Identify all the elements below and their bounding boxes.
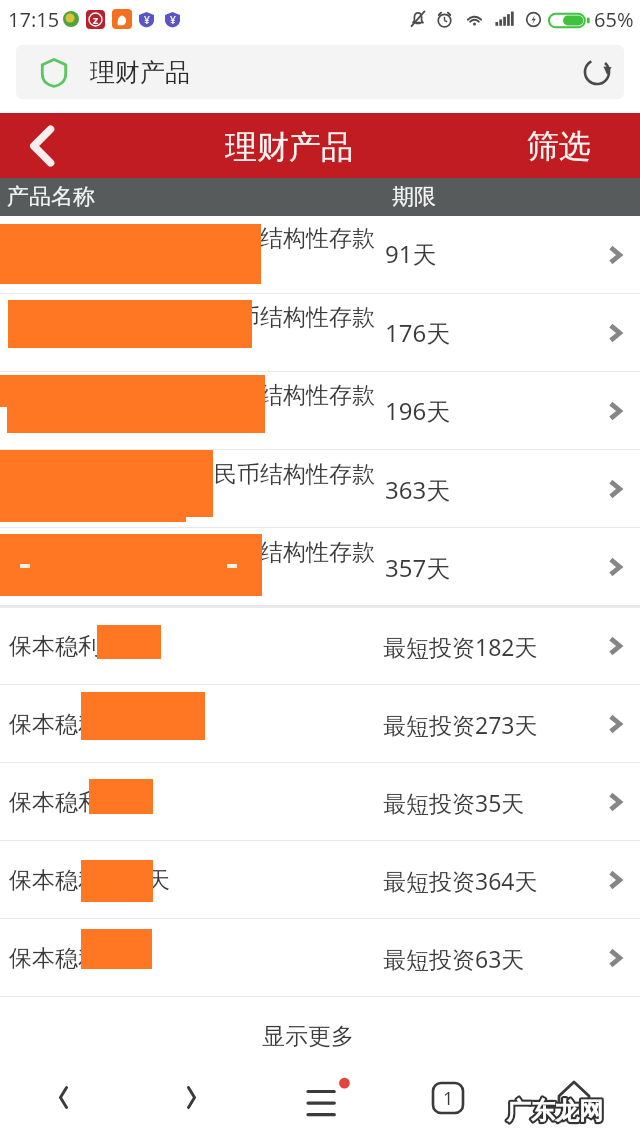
button[interactable]: 结构性存款 — [0, 216, 640, 294]
staticText: 筛选 — [527, 126, 591, 166]
staticText: 65% — [594, 6, 634, 33]
staticText: 17:15 — [8, 6, 60, 33]
button[interactable]: 筛选 — [511, 116, 607, 176]
staticText: 91天 — [385, 237, 437, 270]
staticText: 显示更多 — [262, 1022, 354, 1051]
button[interactable]: 保本稳利理 — [0, 763, 640, 841]
staticText: 357天 — [385, 551, 451, 584]
staticText: 理财产品 — [225, 127, 353, 167]
button[interactable]: 保本稳利理财天 — [0, 841, 640, 919]
staticText: 广东龙网 — [507, 1096, 603, 1126]
staticText: 民币结构性存款 — [214, 460, 375, 489]
staticText: 最短投资273天 — [383, 709, 538, 740]
staticText: 结构性存款 — [260, 538, 375, 567]
button[interactable]: Forward — [163, 1069, 219, 1125]
button[interactable]: 保本稳利理 — [0, 607, 640, 685]
button[interactable]: Back — [35, 1069, 91, 1125]
other: Silent — [409, 10, 427, 28]
staticText: 期限 — [392, 183, 436, 211]
staticText: 广东龙网 — [507, 1096, 603, 1126]
staticText: Z — [93, 14, 99, 26]
staticText: 176天 — [385, 316, 451, 349]
staticText: 196天 — [385, 394, 451, 427]
staticText: 保本稳利理 — [9, 788, 124, 817]
staticText: 结构性存款 — [260, 224, 375, 253]
button[interactable]: 保本稳利理财 — [0, 685, 640, 763]
staticText: 保本稳利理 — [9, 632, 124, 661]
staticText: 币结构性存款 — [237, 303, 375, 332]
button[interactable]: 结构性存款 — [0, 528, 640, 606]
button[interactable]: 结构性存款 — [0, 372, 640, 450]
staticText: 最短投资364天 — [383, 865, 538, 896]
staticText: 最短投资35天 — [383, 787, 525, 818]
staticText: 保本稳利理财天 — [9, 866, 170, 895]
staticText: 结构性存款 — [260, 381, 375, 410]
staticText: 363天 — [385, 473, 451, 506]
button[interactable]: Back — [8, 113, 74, 178]
staticText: 最短投资182天 — [383, 631, 538, 662]
button[interactable]: 币结构性存款 — [0, 294, 640, 372]
button[interactable]: Menu — [292, 1070, 348, 1126]
button[interactable]: 民币结构性存款 — [0, 450, 640, 528]
button[interactable]: 显示更多 — [0, 997, 640, 1069]
staticText: 产品名称 — [7, 183, 95, 211]
button[interactable]: Refresh — [577, 52, 617, 92]
button[interactable]: 保本稳利理 — [0, 919, 640, 997]
staticText: 保本稳利理 — [9, 944, 124, 973]
staticText: 1 — [443, 1086, 454, 1111]
staticText: 理财产品 — [90, 57, 190, 88]
button[interactable]: 理财产品 — [16, 45, 624, 99]
staticText: 保本稳利理财 — [9, 710, 147, 739]
staticText: ¥ — [144, 13, 150, 27]
button[interactable]: Tabs — [420, 1069, 476, 1125]
staticText: ¥ — [170, 13, 176, 27]
staticText: 最短投资63天 — [383, 943, 525, 974]
